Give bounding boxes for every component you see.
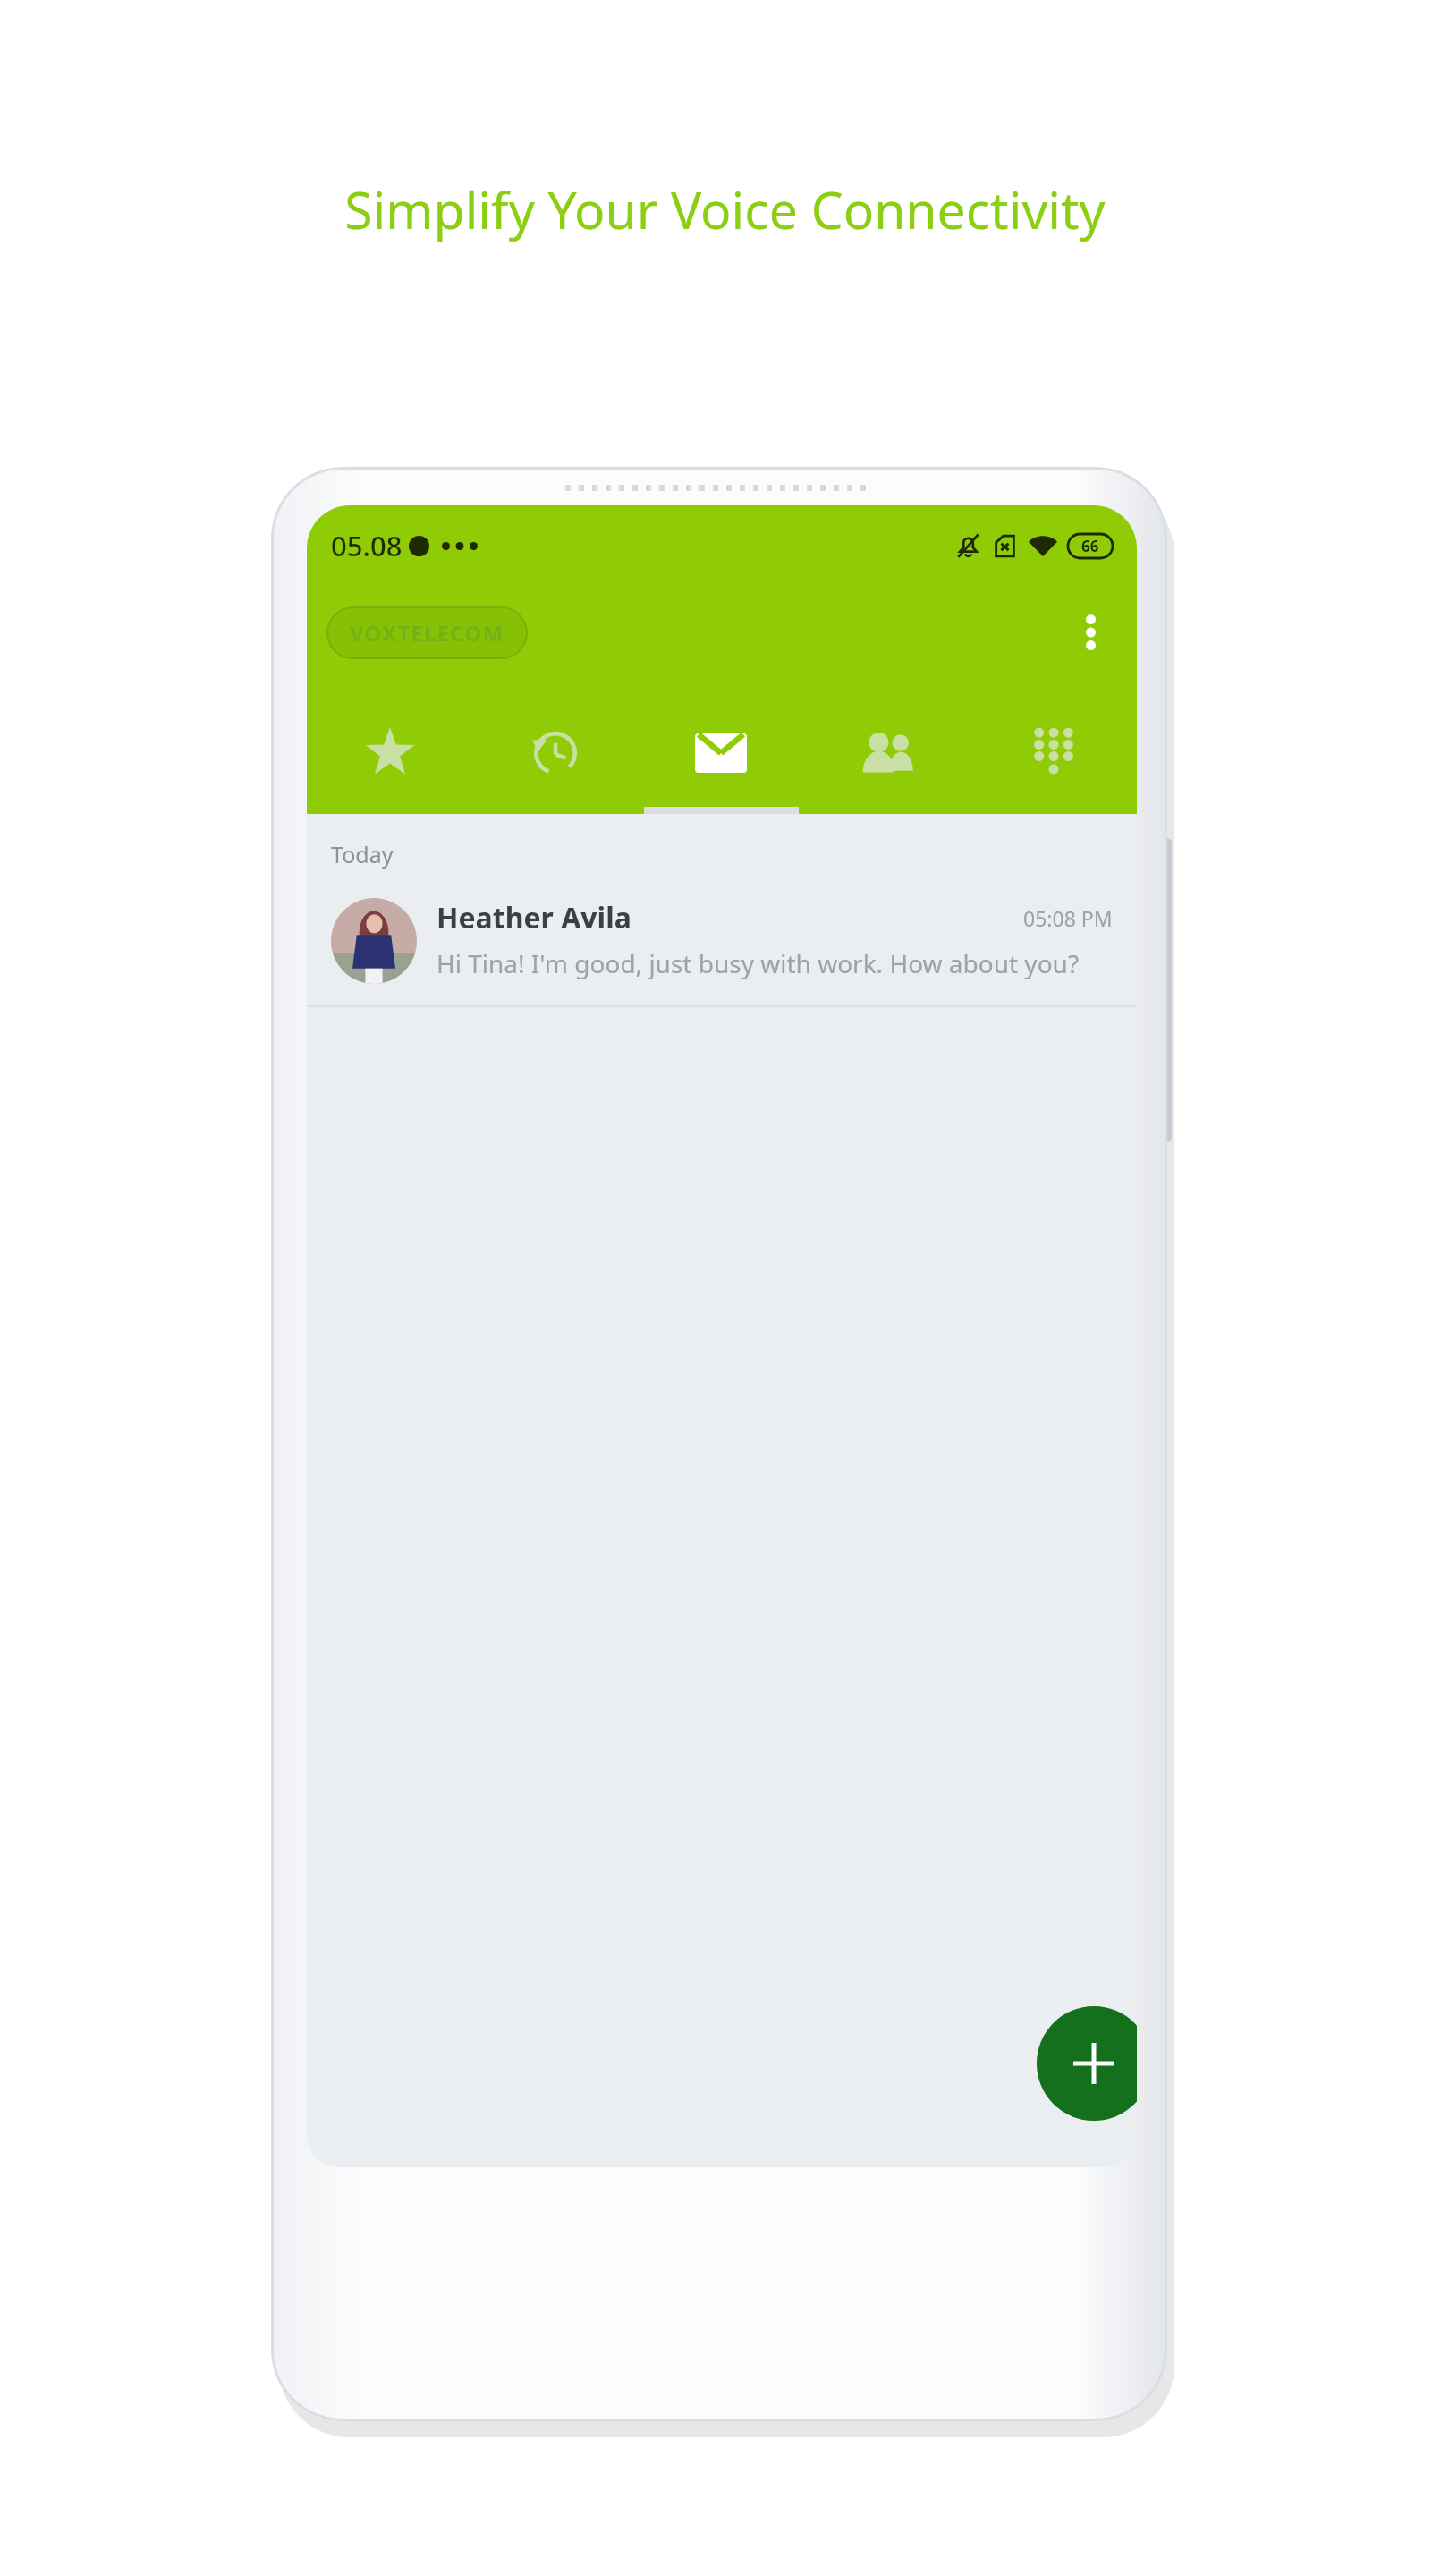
staticText: 05:08 PM [1023,904,1113,932]
staticText: VOXTELECOM [350,618,504,648]
staticText: Simplify Your Voice Connectivity [344,174,1106,244]
staticText: 66 [1081,536,1099,556]
button[interactable]: Contacts [804,703,970,814]
button[interactable]: New message [1037,2006,1137,2121]
button[interactable]: Messages [638,703,804,814]
staticText: Today [331,839,394,869]
staticText: Heather Avila [436,898,1023,937]
staticText: Hi Tina! I'm good, just busy with work. … [436,946,1080,980]
button[interactable]: Favorites [307,703,472,814]
button[interactable]: Dialpad [970,703,1137,814]
button[interactable]: More options [1063,606,1117,659]
staticText: 05.08 [331,527,402,564]
button[interactable]: Recents [472,703,638,814]
button[interactable]: VOXTELECOM [326,606,528,659]
button[interactable]: Heather Avila [307,893,1137,1005]
